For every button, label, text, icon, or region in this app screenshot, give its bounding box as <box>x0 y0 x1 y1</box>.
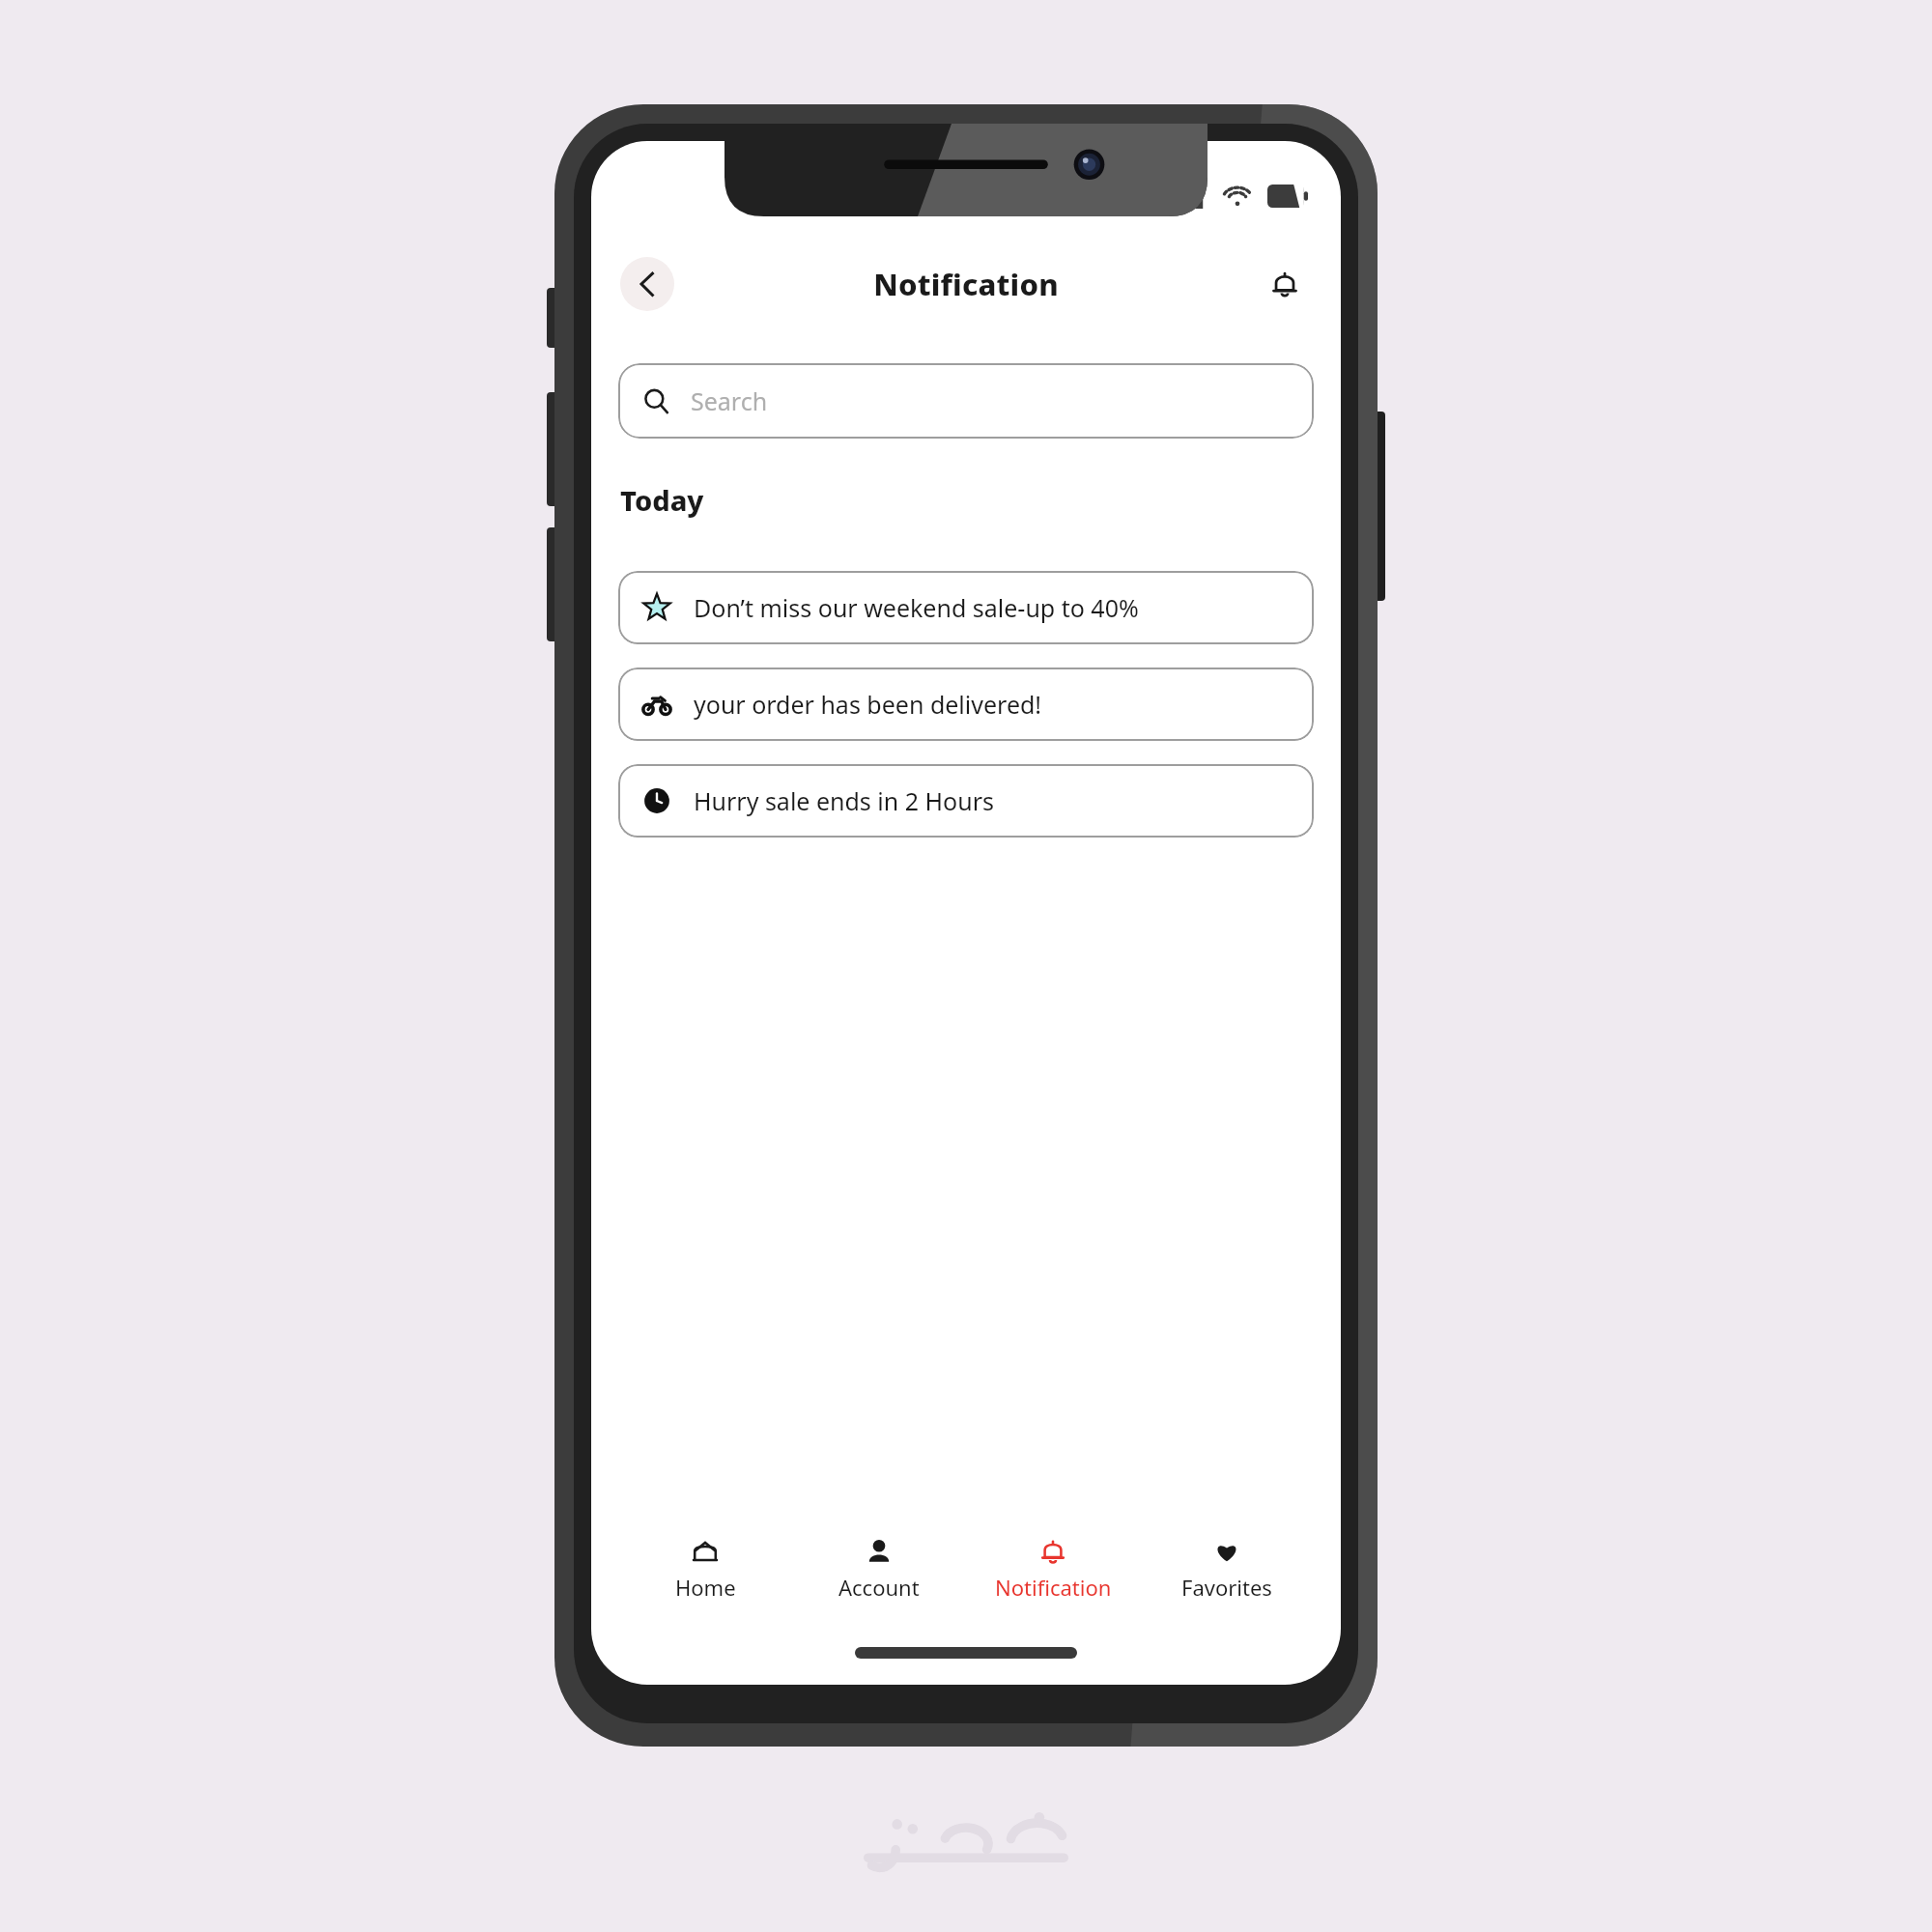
staticText: Today <box>620 481 704 519</box>
staticText: Don’t miss our weekend sale-up to 40% <box>694 591 1139 624</box>
staticText: Search <box>691 384 768 417</box>
button[interactable]: Search <box>618 363 1314 439</box>
staticText: Notification <box>995 1573 1112 1602</box>
staticText: Account <box>838 1573 920 1602</box>
button[interactable]: Don’t miss our weekend sale-up to 40% <box>618 571 1314 644</box>
staticText: Hurry sale ends in 2 Hours <box>694 784 994 817</box>
staticText: your order has been delivered! <box>694 688 1042 721</box>
staticText: Notification <box>674 264 1258 304</box>
button[interactable]: Account <box>792 1517 966 1621</box>
button[interactable]: Favorites <box>1140 1517 1314 1621</box>
staticText: Home <box>675 1573 736 1602</box>
button[interactable]: Hurry sale ends in 2 Hours <box>618 764 1314 838</box>
button[interactable]: your order has been delivered! <box>618 668 1314 741</box>
button[interactable]: Back <box>620 257 674 311</box>
button[interactable]: Home <box>618 1517 792 1621</box>
staticText: Favorites <box>1181 1573 1272 1602</box>
button[interactable]: Notification <box>966 1517 1140 1621</box>
button[interactable]: Notifications <box>1258 257 1312 311</box>
